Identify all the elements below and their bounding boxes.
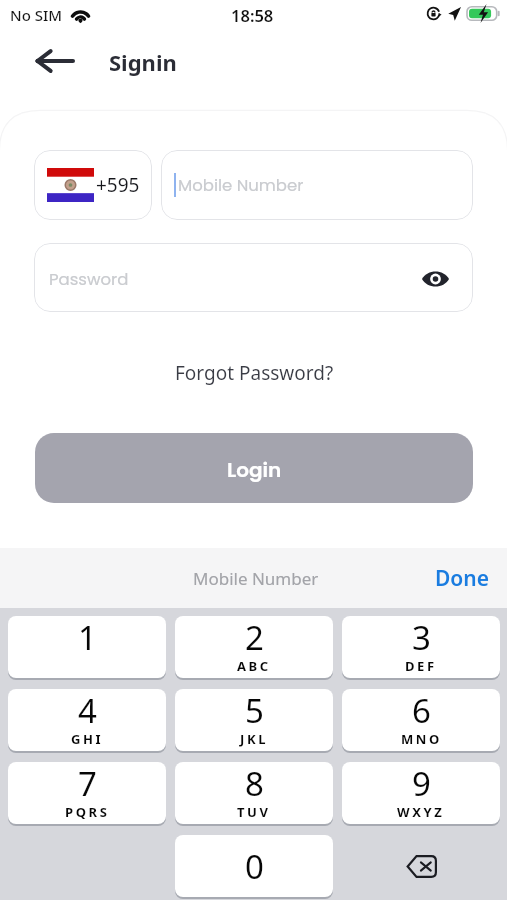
staticText: DEF [405,657,437,675]
button[interactable]: +595 [34,150,152,220]
button[interactable]: 0 [175,835,333,897]
button[interactable]: Forgot Password? [168,358,340,388]
staticText: GHI [71,730,104,748]
staticText: Password [49,268,129,291]
button[interactable]: Done [429,558,495,598]
staticText: Forgot Password? [175,360,334,386]
button[interactable]: 2 [175,616,333,678]
button[interactable]: Back [27,41,83,81]
button[interactable]: 1 [8,616,166,678]
staticText: ABC [237,657,271,675]
button[interactable]: Mobile Number [161,150,473,220]
staticText: 2 [245,616,264,660]
staticText: WXYZ [397,803,445,821]
staticText: 3 [412,616,431,660]
staticText: PQRS [65,803,110,821]
staticText: 0 [245,844,264,889]
button[interactable]: Show password [417,260,453,296]
button[interactable]: 5 [175,689,333,751]
staticText: Mobile Number [178,174,304,197]
staticText: Done [435,564,490,593]
staticText: No SIM [10,5,63,25]
button[interactable]: 7 [8,762,166,824]
staticText: JKL [240,730,269,748]
staticText: MNO [401,730,442,748]
button[interactable]: Login [35,433,473,503]
staticText: Login [227,456,282,484]
button[interactable]: Delete [342,835,500,897]
button[interactable]: 3 [342,616,500,678]
staticText: 9 [412,762,431,806]
staticText: TUV [237,803,271,821]
staticText: Mobile Number [193,567,319,590]
button[interactable]: 8 [175,762,333,824]
staticText: 18:58 [231,4,274,26]
staticText: Signin [109,47,177,77]
staticText: 6 [412,689,431,733]
staticText: 4 [78,689,97,733]
button[interactable]: Password [34,243,473,312]
staticText: 8 [245,762,264,806]
staticText: +595 [96,172,140,198]
staticText: 1 [78,616,97,660]
button[interactable]: 4 [8,689,166,751]
staticText: 5 [245,689,264,733]
staticText: 7 [78,762,97,806]
button[interactable]: 9 [342,762,500,824]
button[interactable]: 6 [342,689,500,751]
